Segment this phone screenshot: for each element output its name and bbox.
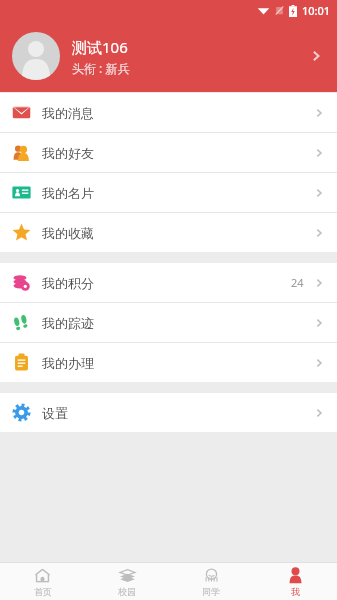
staticText: 首页 (34, 586, 52, 597)
button[interactable]: 同学 (169, 563, 253, 600)
button[interactable]: 我的名片 (0, 173, 337, 212)
staticText: 我的好友 (42, 145, 94, 161)
staticText: 24 (291, 275, 304, 290)
button[interactable]: 我的办理 (0, 343, 337, 382)
staticText: 我的积分 (42, 275, 94, 291)
button[interactable]: 我的好友 (0, 133, 337, 172)
button[interactable]: 我的积分 (0, 263, 337, 302)
staticText: 10:01 (302, 3, 331, 18)
staticText: 同学 (202, 586, 220, 597)
staticText: 校园 (118, 586, 136, 597)
button[interactable]: 设置 (0, 393, 337, 432)
button[interactable]: 我的踪迹 (0, 303, 337, 342)
staticText: 我的名片 (42, 185, 94, 201)
staticText: 头衔 : 新兵 (72, 60, 130, 76)
button[interactable]: 校园 (85, 563, 169, 600)
button[interactable]: 我 (253, 563, 337, 600)
staticText: 我的收藏 (42, 225, 94, 241)
button[interactable]: 测试106 (0, 20, 337, 92)
staticText: 我的踪迹 (42, 315, 94, 331)
button[interactable]: 首页 (0, 563, 85, 600)
staticText: 测试106 (72, 37, 128, 57)
button[interactable]: 我的消息 (0, 93, 337, 132)
staticText: 设置 (42, 405, 68, 421)
staticText: 我 (291, 586, 300, 597)
button[interactable]: 我的收藏 (0, 213, 337, 252)
staticText: 我的办理 (42, 355, 94, 371)
staticText: 我的消息 (42, 105, 94, 121)
